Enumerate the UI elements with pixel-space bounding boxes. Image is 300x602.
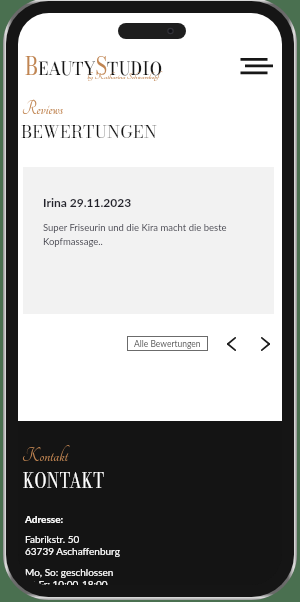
staticText: Mo, So: geschlossen Di-Fr: 10:00-18:00 (25, 566, 114, 585)
staticText: Super Friseurin und die Kira macht die b… (43, 222, 227, 247)
staticText: BeautyStudio (25, 46, 163, 86)
button[interactable]: Alle Bewertungen (127, 336, 208, 351)
staticText: Alle Bewertungen (134, 339, 201, 349)
staticText: Reviews (22, 98, 64, 119)
staticText: Kontakt (22, 445, 68, 466)
staticText: Adresse: (25, 513, 64, 525)
button[interactable]: Irina 29.11.2023 (23, 167, 274, 314)
staticText: Irina 29.11.2023 (43, 195, 132, 209)
staticText: Fabrikstr. 50 63739 Aschaffenburg (25, 533, 120, 557)
button[interactable]: Menu (233, 49, 277, 93)
staticText: by Katharina Schwarzkopf (87, 72, 159, 82)
button[interactable]: Next review (253, 332, 277, 356)
staticText: BEWERTUNGEN (21, 119, 157, 145)
staticText: KONTAKT (23, 465, 105, 496)
button[interactable]: Previous review (219, 332, 243, 356)
